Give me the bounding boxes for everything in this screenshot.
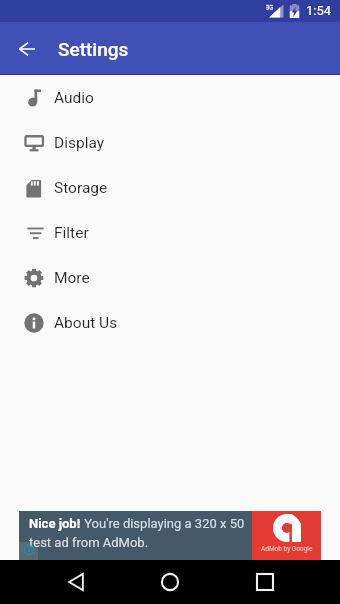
staticText: 1:54 <box>306 3 332 18</box>
staticText: test ad from AdMob. <box>29 535 149 550</box>
staticText: Settings <box>58 38 129 60</box>
staticText: More <box>54 269 90 287</box>
staticText: Audio <box>54 89 94 107</box>
button[interactable]: Back <box>53 560 98 604</box>
staticText: You're displaying a 320 x 50 <box>81 516 245 531</box>
button[interactable]: Display <box>0 120 340 165</box>
button[interactable]: About Us <box>0 300 340 345</box>
staticText: About Us <box>54 314 118 332</box>
button[interactable]: More <box>0 255 340 300</box>
staticText: AdMob by Google <box>261 545 313 553</box>
staticText: Nice job! <box>29 516 81 531</box>
button[interactable]: Filter <box>0 210 340 255</box>
button[interactable]: Storage <box>0 165 340 210</box>
staticText: Filter <box>54 224 89 242</box>
button[interactable]: Nice job! <box>19 511 321 560</box>
button[interactable]: Home <box>147 560 192 604</box>
button[interactable]: Recent apps <box>242 560 287 604</box>
button[interactable]: Ad info <box>19 542 38 560</box>
button[interactable]: Back <box>10 29 44 69</box>
staticText: Display <box>54 134 105 152</box>
button[interactable]: Audio <box>0 75 340 120</box>
staticText: Storage <box>54 179 108 197</box>
